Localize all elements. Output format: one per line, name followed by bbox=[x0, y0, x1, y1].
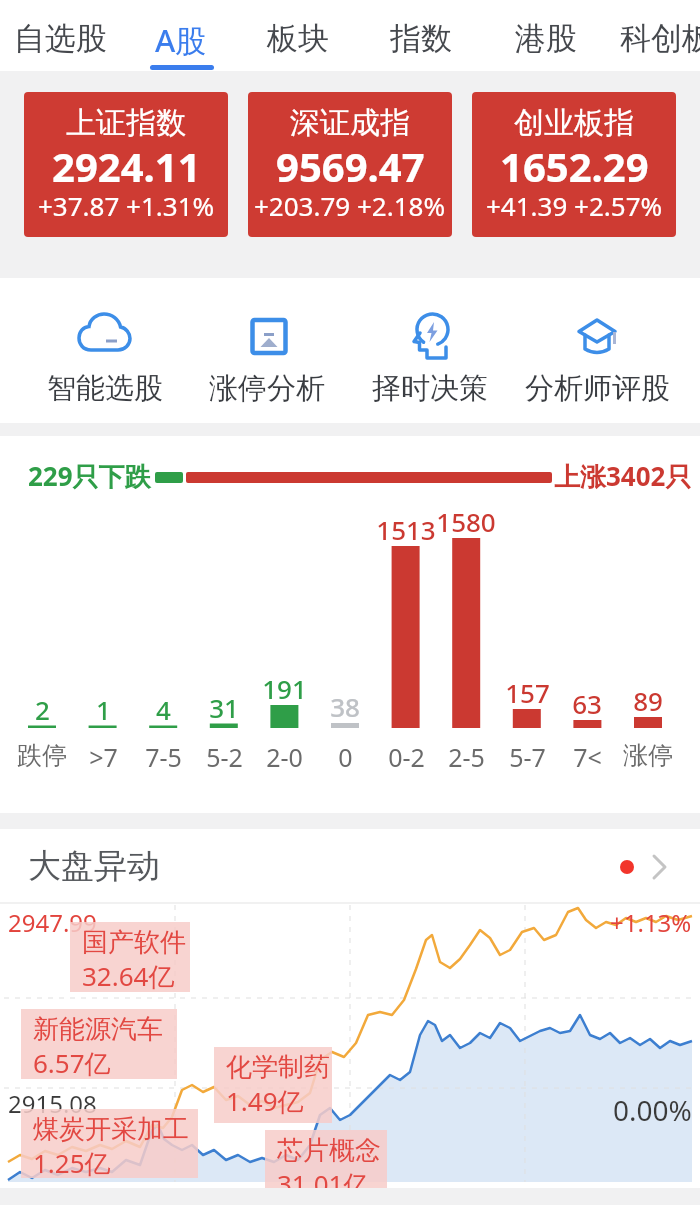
button[interactable]: 国产软件 bbox=[70, 922, 190, 992]
staticText: 31.01亿 bbox=[277, 1166, 370, 1202]
staticText: 煤炭开采加工 bbox=[33, 1113, 189, 1146]
staticText: +203.79 +2.18% bbox=[254, 188, 446, 223]
staticText: 2-0 bbox=[266, 740, 303, 774]
staticText: 科创板 bbox=[620, 19, 700, 58]
button[interactable]: 化学制药 bbox=[214, 1047, 332, 1123]
staticText: 1 bbox=[96, 692, 111, 727]
staticText: 229只下跌 bbox=[28, 458, 151, 494]
staticText: 38 bbox=[330, 689, 360, 724]
staticText: 港股 bbox=[515, 19, 577, 58]
button[interactable]: 新能源汽车 bbox=[21, 1009, 177, 1079]
button[interactable]: 上证指数 bbox=[24, 92, 228, 237]
staticText: 32.64亿 bbox=[82, 958, 175, 994]
staticText: 深证成指 bbox=[290, 104, 410, 142]
staticText: 上证指数 bbox=[66, 104, 186, 142]
button[interactable]: 深证成指 bbox=[248, 92, 452, 237]
button[interactable]: 板块 bbox=[267, 10, 329, 62]
button[interactable]: 科创板 bbox=[620, 10, 700, 62]
staticText: 新能源汽车 bbox=[33, 1013, 163, 1046]
staticText: +1.13% bbox=[610, 906, 692, 939]
staticText: 89 bbox=[633, 683, 663, 718]
staticText: 0.00% bbox=[613, 1091, 692, 1129]
button[interactable]: 涨停分析 bbox=[177, 370, 357, 410]
button[interactable]: 择时决策 bbox=[340, 370, 520, 410]
staticText: 9569.47 bbox=[276, 139, 425, 193]
staticText: 1.49亿 bbox=[226, 1083, 304, 1119]
staticText: 5-2 bbox=[206, 740, 243, 774]
staticText: 大盘异动 bbox=[28, 845, 160, 887]
button[interactable]: A股 bbox=[155, 10, 207, 62]
staticText: 2915.08 bbox=[8, 1087, 97, 1120]
button[interactable]: 煤炭开采加工 bbox=[21, 1109, 198, 1178]
staticText: 上涨3402只 bbox=[554, 458, 692, 494]
staticText: >7 bbox=[89, 740, 118, 774]
staticText: 63 bbox=[572, 686, 602, 721]
staticText: 7< bbox=[573, 740, 602, 774]
staticText: 化学制药 bbox=[226, 1051, 330, 1084]
button[interactable]: 创业板指 bbox=[472, 92, 676, 237]
button[interactable]: 智能选股 bbox=[15, 370, 195, 410]
button[interactable]: 港股 bbox=[515, 10, 577, 62]
staticText: 1.25亿 bbox=[33, 1145, 111, 1181]
staticText: 自选股 bbox=[14, 19, 107, 58]
staticText: 2 bbox=[35, 692, 50, 727]
staticText: 创业板指 bbox=[514, 104, 634, 142]
staticText: 择时决策 bbox=[372, 370, 488, 407]
staticText: 板块 bbox=[267, 19, 329, 58]
staticText: 6.57亿 bbox=[33, 1045, 111, 1081]
staticText: 5-7 bbox=[509, 740, 546, 774]
staticText: 国产软件 bbox=[82, 926, 186, 959]
staticText: 涨停分析 bbox=[209, 370, 325, 407]
staticText: 2947.99 bbox=[8, 906, 97, 939]
staticText: 2-5 bbox=[448, 740, 485, 774]
staticText: 4 bbox=[156, 692, 171, 727]
button[interactable]: 指数 bbox=[390, 10, 452, 62]
button[interactable]: 芯片概念 bbox=[265, 1130, 387, 1205]
staticText: 跌停 bbox=[17, 740, 67, 771]
staticText: 7-5 bbox=[145, 740, 182, 774]
staticText: 31 bbox=[209, 690, 239, 725]
staticText: 指数 bbox=[390, 19, 452, 58]
staticText: 1513 bbox=[376, 512, 436, 547]
button[interactable]: 大盘异动 bbox=[0, 829, 700, 903]
staticText: +41.39 +2.57% bbox=[486, 188, 663, 223]
staticText: 157 bbox=[505, 675, 550, 710]
staticText: 1652.29 bbox=[500, 139, 649, 193]
staticText: 智能选股 bbox=[47, 370, 163, 407]
staticText: 芯片概念 bbox=[277, 1134, 381, 1167]
staticText: +37.87 +1.31% bbox=[38, 188, 215, 223]
staticText: 2924.11 bbox=[52, 139, 201, 193]
staticText: 分析师评股 bbox=[525, 370, 670, 407]
staticText: 0-2 bbox=[388, 740, 425, 774]
staticText: 涨停 bbox=[623, 740, 673, 771]
button[interactable]: 分析师评股 bbox=[507, 370, 687, 410]
button[interactable]: 自选股 bbox=[14, 10, 107, 62]
staticText: 1580 bbox=[436, 504, 496, 539]
staticText: A股 bbox=[155, 19, 207, 61]
staticText: 0 bbox=[338, 740, 353, 774]
staticText: 191 bbox=[262, 671, 307, 706]
